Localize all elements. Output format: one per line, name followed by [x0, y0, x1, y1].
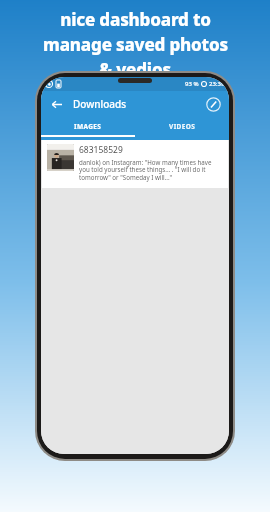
button[interactable]: VIDEOS: [135, 117, 229, 135]
staticText: Downloads: [73, 97, 127, 111]
staticText: & vedios: [99, 58, 171, 81]
staticText: manage saved photos: [43, 33, 228, 56]
staticText: danlok) on Instagram: "How many times ha…: [79, 158, 222, 182]
staticText: VIDEOS: [169, 122, 196, 131]
staticText: 683158529: [79, 144, 123, 156]
button[interactable]: Back: [47, 95, 65, 113]
button[interactable]: Clear downloads: [203, 94, 223, 114]
staticText: 23:39: [209, 80, 225, 88]
staticText: IMAGES: [74, 122, 102, 131]
staticText: nice dashboard to: [60, 8, 211, 31]
button[interactable]: 683158529: [42, 140, 228, 188]
button[interactable]: IMAGES: [41, 117, 135, 135]
staticText: 93 %: [185, 80, 199, 88]
